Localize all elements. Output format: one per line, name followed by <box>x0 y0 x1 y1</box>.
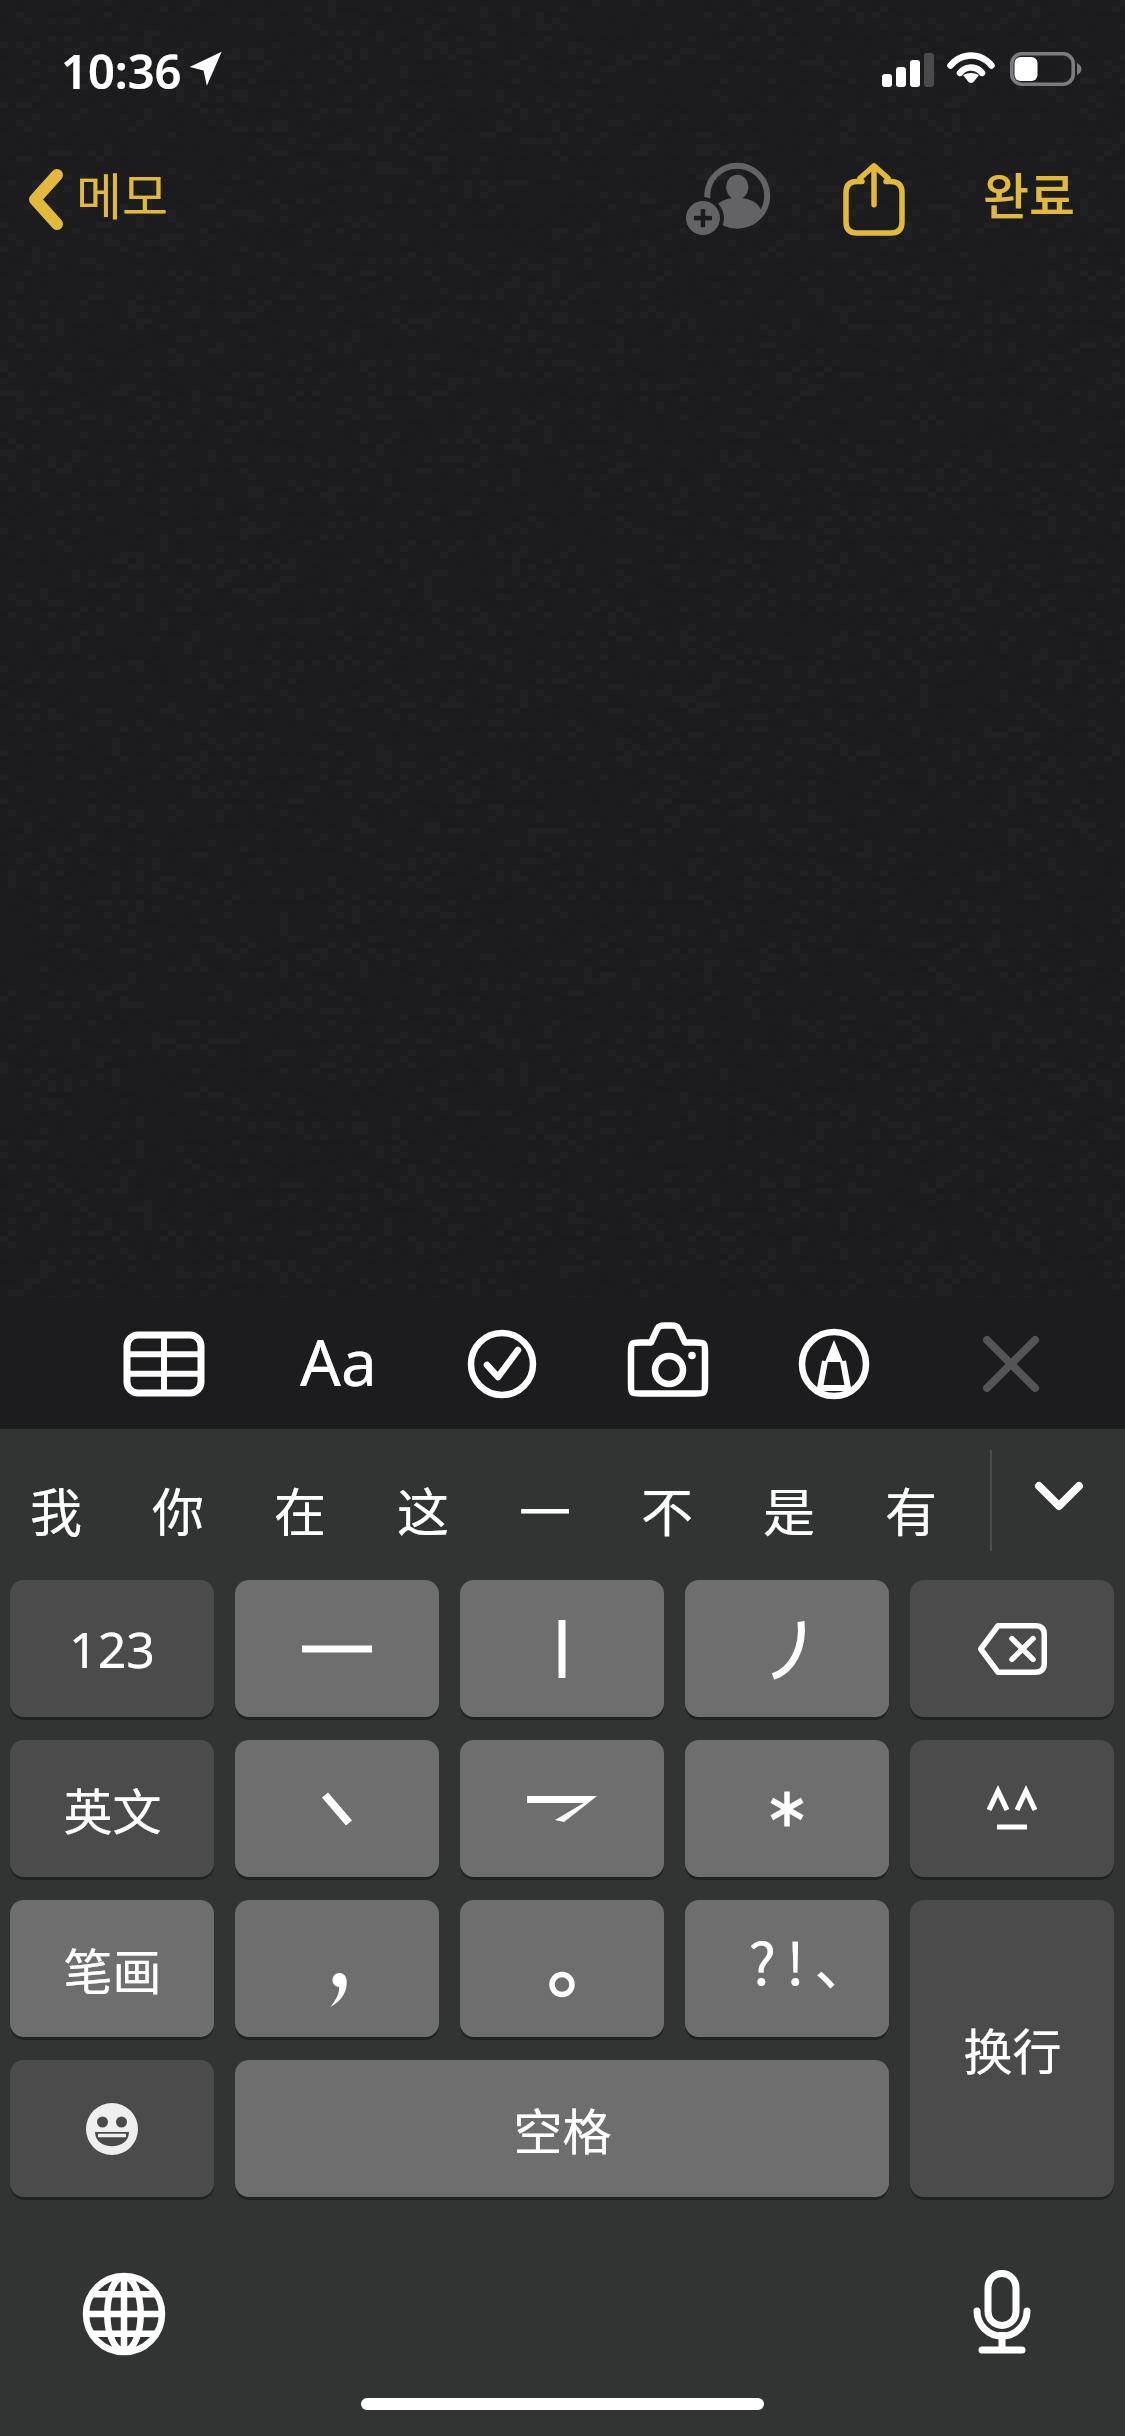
button[interactable]: 123 <box>10 1580 214 1717</box>
button[interactable] <box>235 1900 439 2037</box>
button[interactable]: 英文 <box>10 1740 214 1877</box>
button[interactable]: Checklist <box>440 1297 564 1429</box>
button[interactable] <box>460 1580 664 1717</box>
button[interactable]: 有 <box>853 1453 969 1565</box>
staticText: Aa <box>300 1318 377 1405</box>
button[interactable]: ?!、 <box>685 1900 889 2037</box>
button[interactable] <box>685 1740 889 1877</box>
button[interactable]: 空格 <box>235 2060 889 2197</box>
button[interactable]: 완료 <box>958 143 1100 243</box>
button[interactable]: 在 <box>242 1453 358 1565</box>
button[interactable]: 这 <box>365 1453 481 1565</box>
button[interactable]: Emoticons <box>910 1740 1114 1877</box>
button[interactable]: Aa <box>266 1297 410 1429</box>
button[interactable]: More suggestions <box>999 1440 1119 1552</box>
staticText: 我 <box>30 1472 83 1547</box>
staticText: 不 <box>641 1472 694 1547</box>
button[interactable]: 一 <box>487 1453 603 1565</box>
staticText: 英文 <box>63 1773 162 1844</box>
staticText: 有 <box>885 1472 938 1547</box>
staticText: 是 <box>763 1472 816 1547</box>
staticText: 笔画 <box>63 1933 162 2004</box>
button[interactable]: 不 <box>609 1453 725 1565</box>
button[interactable]: Table <box>102 1297 226 1429</box>
staticText: 你 <box>152 1472 205 1547</box>
button[interactable]: Switch keyboard <box>60 2254 188 2374</box>
button[interactable]: Camera <box>606 1297 730 1429</box>
staticText: 这 <box>397 1472 450 1547</box>
button[interactable]: 换行 <box>910 1900 1114 2197</box>
button[interactable] <box>460 1740 664 1877</box>
button[interactable]: Share <box>820 146 928 248</box>
staticText: 완료 <box>983 157 1075 229</box>
button[interactable] <box>460 1900 664 2037</box>
button[interactable]: 是 <box>731 1453 847 1565</box>
staticText: ?!、 <box>748 1918 883 2002</box>
button[interactable]: Emoji <box>10 2060 214 2197</box>
button[interactable]: Add people <box>665 146 785 248</box>
button[interactable]: Markup <box>772 1297 896 1429</box>
staticText: 换行 <box>963 2013 1062 2084</box>
button[interactable] <box>235 1740 439 1877</box>
button[interactable]: Close keyboard <box>949 1297 1073 1429</box>
staticText: 메모 <box>76 157 168 229</box>
button[interactable] <box>685 1580 889 1717</box>
staticText: 在 <box>274 1472 327 1547</box>
button[interactable]: 笔画 <box>10 1900 214 2037</box>
staticText: 123 <box>69 1615 155 1683</box>
button[interactable]: 你 <box>120 1453 236 1565</box>
staticText: 空格 <box>513 2093 612 2164</box>
staticText: 一 <box>519 1472 572 1547</box>
button[interactable] <box>235 1580 439 1717</box>
button[interactable]: 我 <box>0 1453 114 1565</box>
button[interactable]: Dictation <box>938 2254 1066 2374</box>
button[interactable]: 메모 <box>29 143 168 243</box>
staticText: 10:36 <box>61 39 182 103</box>
button[interactable]: Delete <box>910 1580 1114 1717</box>
